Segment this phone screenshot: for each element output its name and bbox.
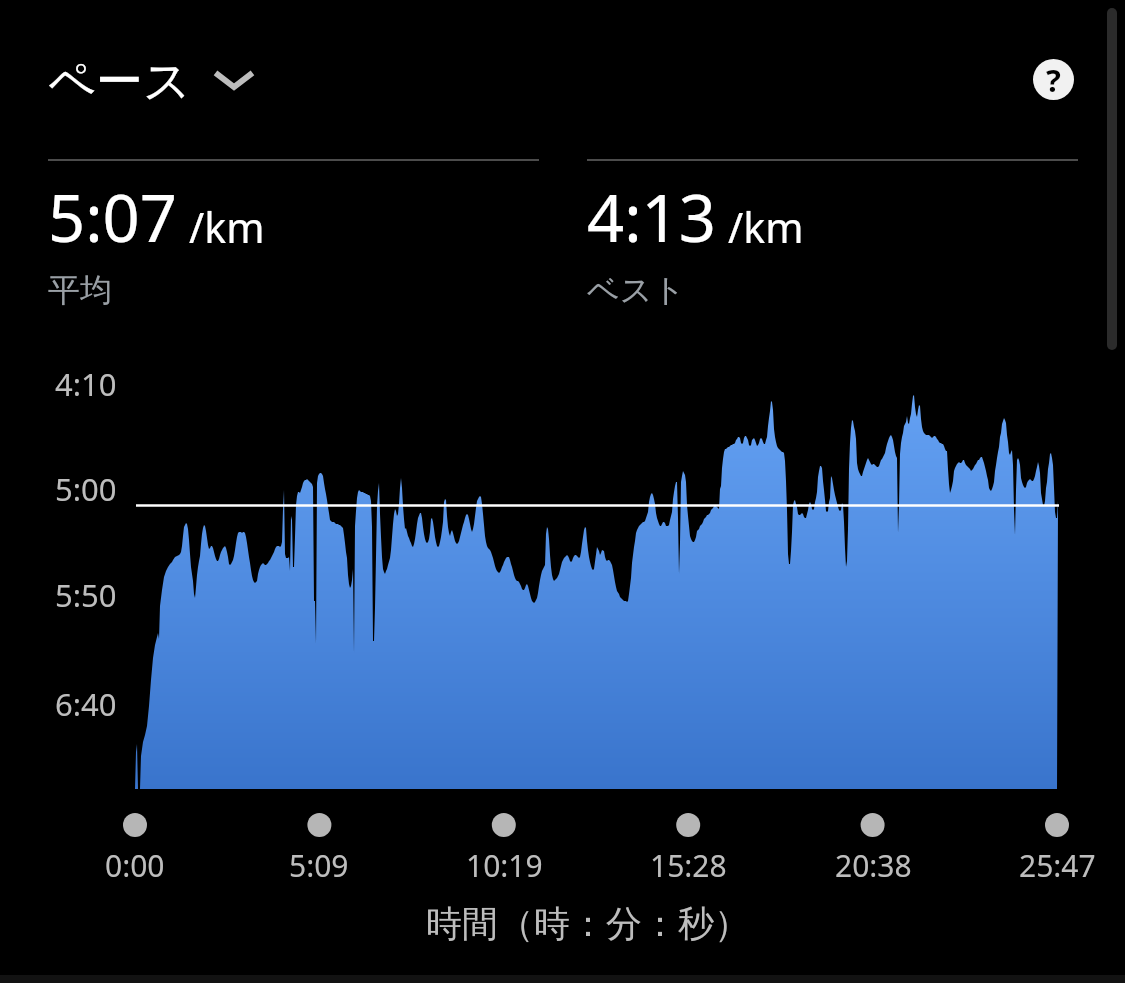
- staticText: 5:07: [48, 173, 177, 262]
- button[interactable]: ペース: [44, 44, 260, 115]
- staticText: 4:13: [587, 173, 716, 262]
- staticText: 平均: [48, 270, 112, 310]
- staticText: 時間（時：分：秒）: [426, 901, 750, 946]
- staticText: /km: [189, 199, 265, 255]
- staticText: ?: [1046, 59, 1061, 100]
- staticText: 6:40: [55, 683, 117, 725]
- button[interactable]: Help: [1033, 59, 1074, 100]
- staticText: 25:47: [1019, 845, 1096, 886]
- staticText: /km: [728, 199, 804, 255]
- staticText: ベスト: [587, 270, 686, 310]
- staticText: 0:00: [105, 845, 165, 886]
- staticText: 4:10: [55, 363, 117, 405]
- staticText: 5:50: [55, 574, 117, 616]
- staticText: 5:09: [289, 845, 349, 886]
- staticText: 20:38: [835, 845, 912, 886]
- staticText: 15:28: [650, 845, 727, 886]
- staticText: 5:00: [55, 468, 117, 510]
- staticText: ペース: [48, 52, 192, 111]
- staticText: 10:19: [466, 845, 543, 886]
